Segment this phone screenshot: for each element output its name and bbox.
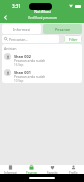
staticText: Pesanan anda sudah bbox=[14, 59, 46, 63]
staticText: Pencarian... bbox=[9, 37, 29, 42]
staticText: Informasi bbox=[4, 171, 17, 174]
button[interactable]: Back bbox=[1, 13, 10, 22]
button[interactable]: Shan 001 bbox=[4, 68, 79, 83]
staticText: 10 Sep bbox=[14, 79, 24, 83]
staticText: Shan 002 bbox=[14, 54, 31, 59]
button[interactable]: Informasi bbox=[2, 24, 41, 34]
button[interactable]: Shan 002 bbox=[4, 52, 79, 67]
staticText: Pesanan anda sudah bbox=[14, 75, 46, 79]
button[interactable]: Favorite bbox=[42, 165, 63, 174]
staticText: Favorite bbox=[47, 171, 58, 174]
button[interactable]: Pesanan bbox=[43, 24, 82, 34]
button[interactable]: Informasi bbox=[0, 165, 21, 174]
staticText: 16 Sep bbox=[14, 63, 24, 67]
button[interactable]: Filter bbox=[64, 35, 82, 43]
staticText: 3:31 bbox=[12, 3, 21, 9]
staticText: Verifikasi pesanan bbox=[28, 15, 57, 20]
staticText: Notifikasi bbox=[34, 9, 51, 14]
staticText: Shan 001 bbox=[14, 70, 31, 75]
button[interactable]: Pesanan bbox=[21, 165, 42, 174]
button[interactable]: Profile bbox=[63, 165, 84, 174]
staticText: Pesanan bbox=[55, 27, 71, 32]
staticText: Informasi bbox=[13, 27, 31, 32]
staticText: Profile bbox=[69, 171, 78, 174]
button[interactable]: Pencarian... bbox=[4, 35, 57, 43]
staticText: Filter bbox=[69, 37, 78, 42]
staticText: Antrian bbox=[4, 46, 17, 51]
staticText: Pesanan bbox=[26, 171, 38, 174]
